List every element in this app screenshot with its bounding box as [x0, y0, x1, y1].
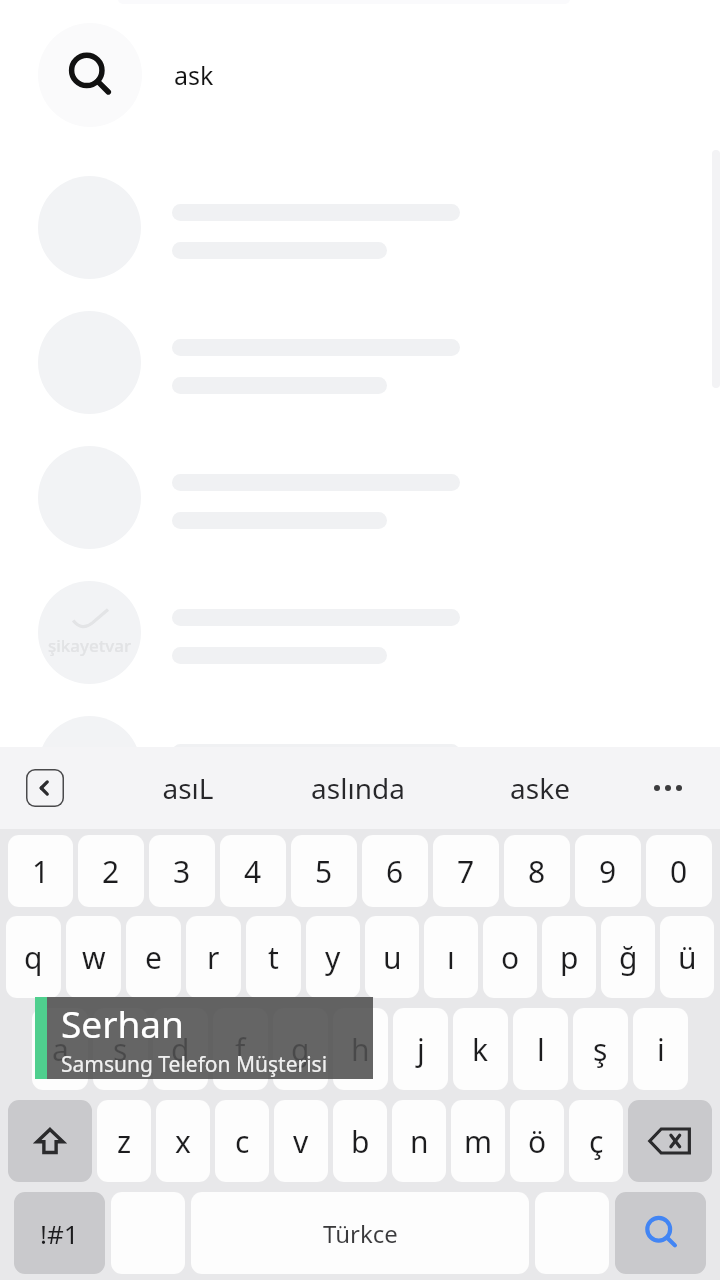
- button[interactable]: 5: [291, 835, 357, 907]
- staticText: 1: [32, 851, 50, 892]
- button[interactable]: g: [273, 1008, 328, 1090]
- button[interactable]: j: [393, 1008, 448, 1090]
- staticText: b: [351, 1121, 370, 1162]
- button[interactable]: y: [306, 916, 360, 998]
- staticText: ı: [447, 937, 455, 978]
- button[interactable]: z: [97, 1100, 151, 1182]
- staticText: ğ: [619, 937, 638, 978]
- button[interactable]: Serhan: [35, 997, 373, 1079]
- button[interactable]: n: [392, 1100, 446, 1182]
- staticText: m: [464, 1121, 493, 1162]
- button[interactable]: 0: [646, 835, 712, 907]
- staticText: w: [82, 937, 106, 978]
- staticText: i: [657, 1029, 665, 1070]
- button[interactable]: 7: [433, 835, 499, 907]
- button[interactable]: şikayetvar: [0, 577, 720, 707]
- button[interactable]: ö: [510, 1100, 564, 1182]
- staticText: g: [291, 1029, 310, 1070]
- button[interactable]: o: [483, 916, 537, 998]
- button[interactable]: [0, 442, 720, 572]
- staticText: ü: [678, 937, 697, 978]
- staticText: 9: [599, 851, 617, 892]
- button[interactable]: More suggestions: [642, 762, 694, 814]
- button[interactable]: aslında: [288, 747, 428, 829]
- button[interactable]: asıL: [118, 747, 258, 829]
- button[interactable]: m: [451, 1100, 505, 1182]
- button[interactable]: w: [66, 916, 121, 998]
- button[interactable]: a: [32, 1008, 88, 1090]
- button[interactable]: t: [246, 916, 301, 998]
- button[interactable]: v: [274, 1100, 328, 1182]
- staticText: 6: [386, 851, 404, 892]
- staticText: aske: [510, 769, 570, 807]
- button[interactable]: 6: [362, 835, 428, 907]
- button[interactable]: b: [333, 1100, 387, 1182]
- button[interactable]: k: [453, 1008, 508, 1090]
- staticText: Serhan: [61, 998, 184, 1048]
- staticText: asıL: [162, 769, 214, 807]
- staticText: s: [113, 1029, 128, 1070]
- staticText: Samsung Telefon Müşterisi: [61, 1050, 328, 1079]
- button[interactable]: 2: [78, 835, 144, 907]
- button[interactable]: Previous: [26, 769, 64, 807]
- button[interactable]: h: [333, 1008, 388, 1090]
- staticText: ş: [593, 1029, 608, 1070]
- staticText: y: [325, 937, 341, 978]
- staticText: 8: [528, 851, 546, 892]
- staticText: ö: [528, 1121, 547, 1162]
- button[interactable]: ı: [424, 916, 478, 998]
- button[interactable]: ğ: [601, 916, 655, 998]
- button[interactable]: Shift: [8, 1100, 92, 1182]
- button[interactable]: e: [126, 916, 181, 998]
- staticText: r: [207, 937, 220, 978]
- staticText: n: [410, 1121, 429, 1162]
- staticText: t: [268, 937, 279, 978]
- staticText: o: [501, 937, 520, 978]
- button[interactable]: 3: [149, 835, 215, 907]
- button[interactable]: Backspace: [628, 1100, 712, 1182]
- staticText: u: [383, 937, 402, 978]
- staticText: c: [235, 1121, 250, 1162]
- button[interactable]: x: [156, 1100, 210, 1182]
- button[interactable]: p: [542, 916, 596, 998]
- button[interactable]: i: [633, 1008, 688, 1090]
- button[interactable]: u: [365, 916, 419, 998]
- staticText: j: [417, 1029, 425, 1070]
- button[interactable]: 4: [220, 835, 286, 907]
- button[interactable]: ü: [660, 916, 714, 998]
- staticText: şikayetvar: [48, 634, 132, 657]
- staticText: 3: [173, 851, 191, 892]
- button[interactable]: !#1: [14, 1192, 105, 1274]
- button[interactable]: [0, 172, 720, 302]
- staticText: 2: [102, 851, 120, 892]
- button[interactable]: [0, 712, 720, 842]
- staticText: !#1: [40, 1216, 79, 1251]
- staticText: k: [472, 1029, 489, 1070]
- button[interactable]: r: [186, 916, 241, 998]
- button[interactable]: q: [6, 916, 61, 998]
- other: Search: [38, 23, 142, 127]
- button[interactable]: ş: [573, 1008, 628, 1090]
- button[interactable]: Search: [615, 1192, 706, 1274]
- staticText: p: [560, 937, 579, 978]
- button[interactable]: l: [513, 1008, 568, 1090]
- staticText: a: [52, 1029, 69, 1070]
- button[interactable]: Search: [0, 0, 720, 150]
- button[interactable]: s: [93, 1008, 148, 1090]
- staticText: h: [351, 1029, 370, 1070]
- button[interactable]: [0, 307, 720, 437]
- button[interactable]: 9: [575, 835, 641, 907]
- button[interactable]: 8: [504, 835, 570, 907]
- staticText: e: [145, 937, 162, 978]
- staticText: ç: [589, 1121, 604, 1162]
- button[interactable]: ç: [569, 1100, 623, 1182]
- button[interactable]: f: [213, 1008, 268, 1090]
- button[interactable]: d: [153, 1008, 208, 1090]
- button[interactable]: aske: [470, 747, 610, 829]
- button[interactable]: c: [215, 1100, 269, 1182]
- staticText: q: [24, 937, 43, 978]
- button[interactable]: Türkce: [191, 1192, 529, 1274]
- button[interactable]: 1: [8, 835, 73, 907]
